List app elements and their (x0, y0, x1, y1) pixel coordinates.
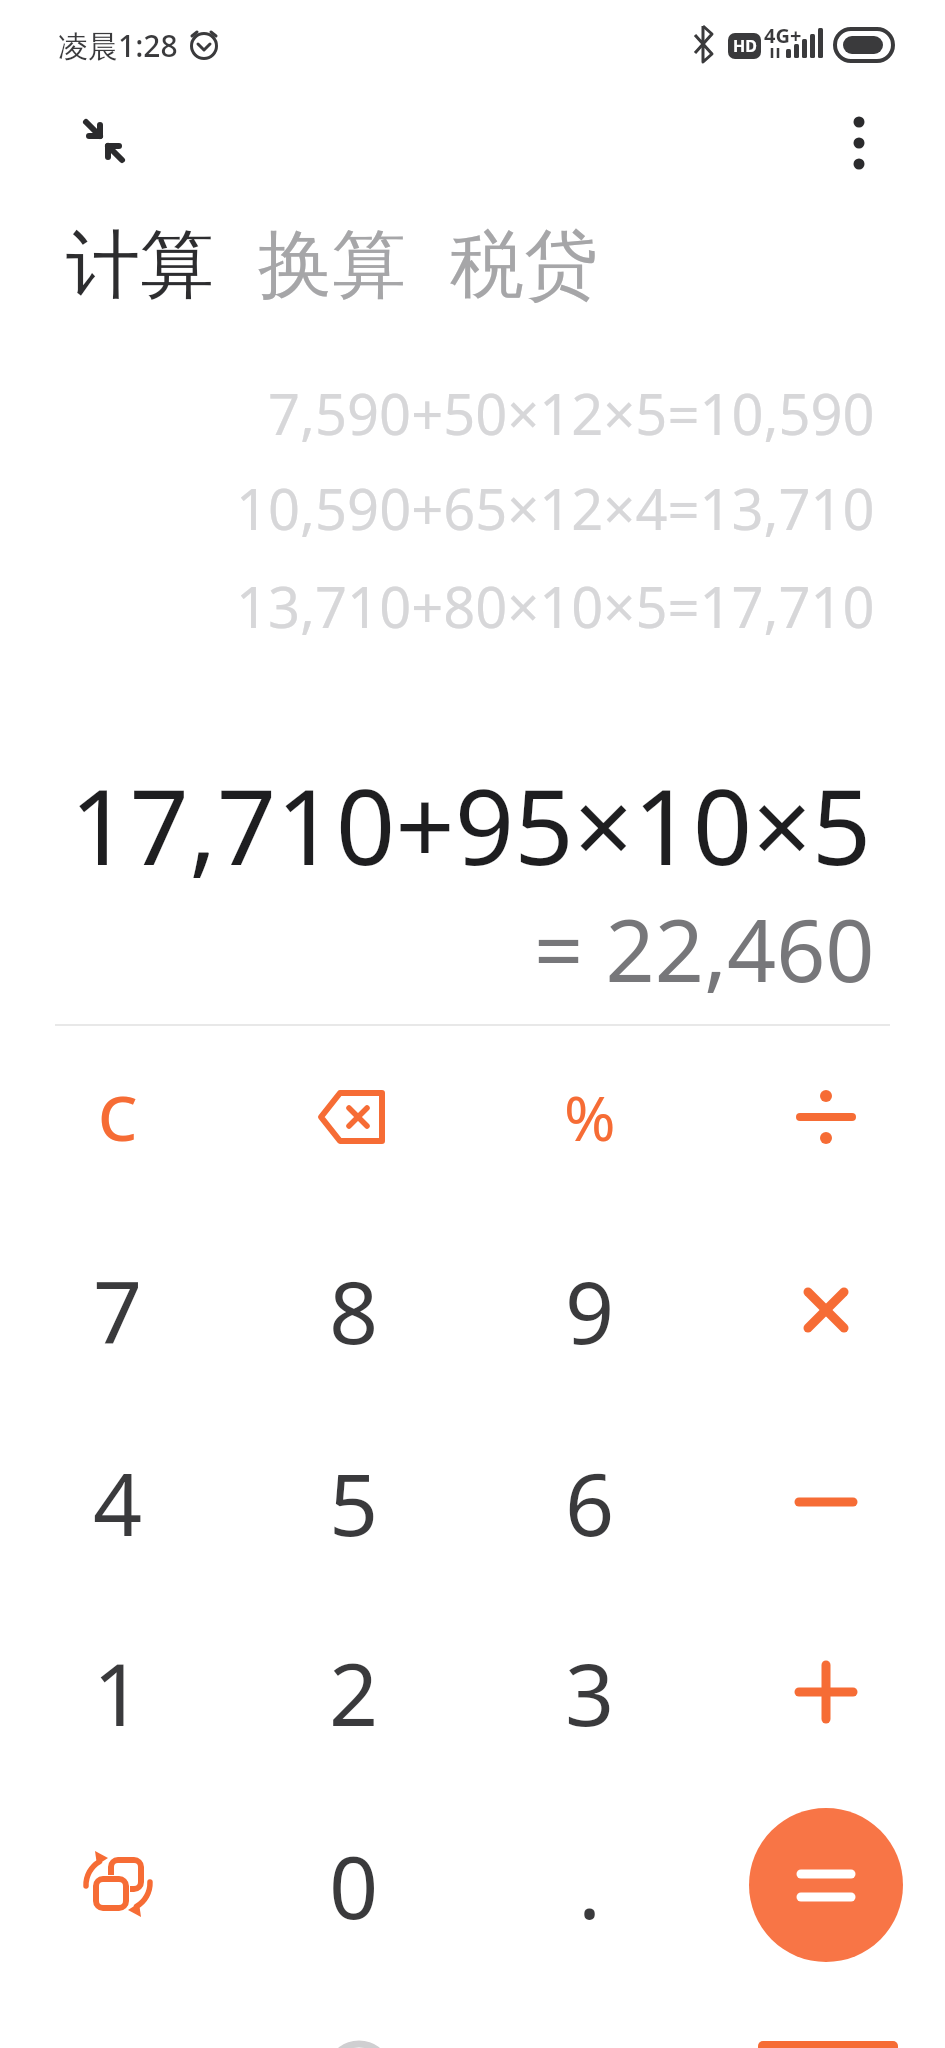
button[interactable]: % (472, 1021, 708, 1213)
button[interactable] (708, 1596, 944, 1788)
staticText: 8 (329, 1252, 379, 1369)
staticText: 1 (93, 1634, 143, 1751)
button[interactable]: 3 (472, 1596, 708, 1788)
staticText: 10,590+65×12×4=13,710 (236, 470, 875, 546)
button[interactable]: 5 (236, 1406, 472, 1598)
staticText: 6 (565, 1444, 615, 1561)
button[interactable]: 税贷 (450, 219, 598, 312)
staticText: 计算 (66, 219, 214, 312)
staticText: 4G+ (764, 22, 802, 49)
staticText: 4 (93, 1444, 143, 1561)
staticText: % (564, 1075, 616, 1159)
button[interactable] (749, 1808, 903, 1962)
button[interactable]: 9 (472, 1214, 708, 1406)
button[interactable]: 0 (236, 1789, 472, 1981)
staticText: 2 (329, 1634, 379, 1751)
staticText: 7 (93, 1252, 143, 1369)
button[interactable]: 换算 (258, 219, 406, 312)
staticText: 17,710+95×10×5 (70, 754, 872, 896)
button[interactable]: 2 (236, 1596, 472, 1788)
button[interactable] (708, 1021, 944, 1213)
button[interactable]: 6 (472, 1406, 708, 1598)
button[interactable] (0, 1789, 236, 1981)
staticText: 0 (329, 1827, 379, 1944)
staticText: 7,590+50×12×5=10,590 (268, 375, 875, 451)
button[interactable]: 计算 (66, 219, 214, 312)
button[interactable] (708, 1214, 944, 1406)
button[interactable] (70, 105, 140, 175)
staticText: 9 (565, 1252, 615, 1369)
button[interactable] (708, 1406, 944, 1598)
button[interactable]: . (472, 1789, 708, 1981)
button[interactable]: 1 (0, 1596, 236, 1788)
staticText: 税贷 (450, 219, 598, 312)
button[interactable]: 4 (0, 1406, 236, 1598)
button[interactable] (236, 1021, 472, 1213)
button[interactable]: 7 (0, 1214, 236, 1406)
staticText: 凌晨1:28 (58, 25, 178, 66)
staticText: 5 (329, 1444, 379, 1561)
staticText: 3 (565, 1634, 615, 1751)
staticText: 换算 (258, 219, 406, 312)
staticText: C (98, 1075, 138, 1159)
staticText: HD (733, 35, 757, 57)
staticText: = 22,460 (534, 890, 875, 1007)
button[interactable] (834, 105, 884, 180)
button[interactable]: 8 (236, 1214, 472, 1406)
button[interactable]: C (0, 1021, 236, 1213)
staticText: 13,710+80×10×5=17,710 (236, 568, 875, 644)
staticText: . (578, 1827, 602, 1944)
